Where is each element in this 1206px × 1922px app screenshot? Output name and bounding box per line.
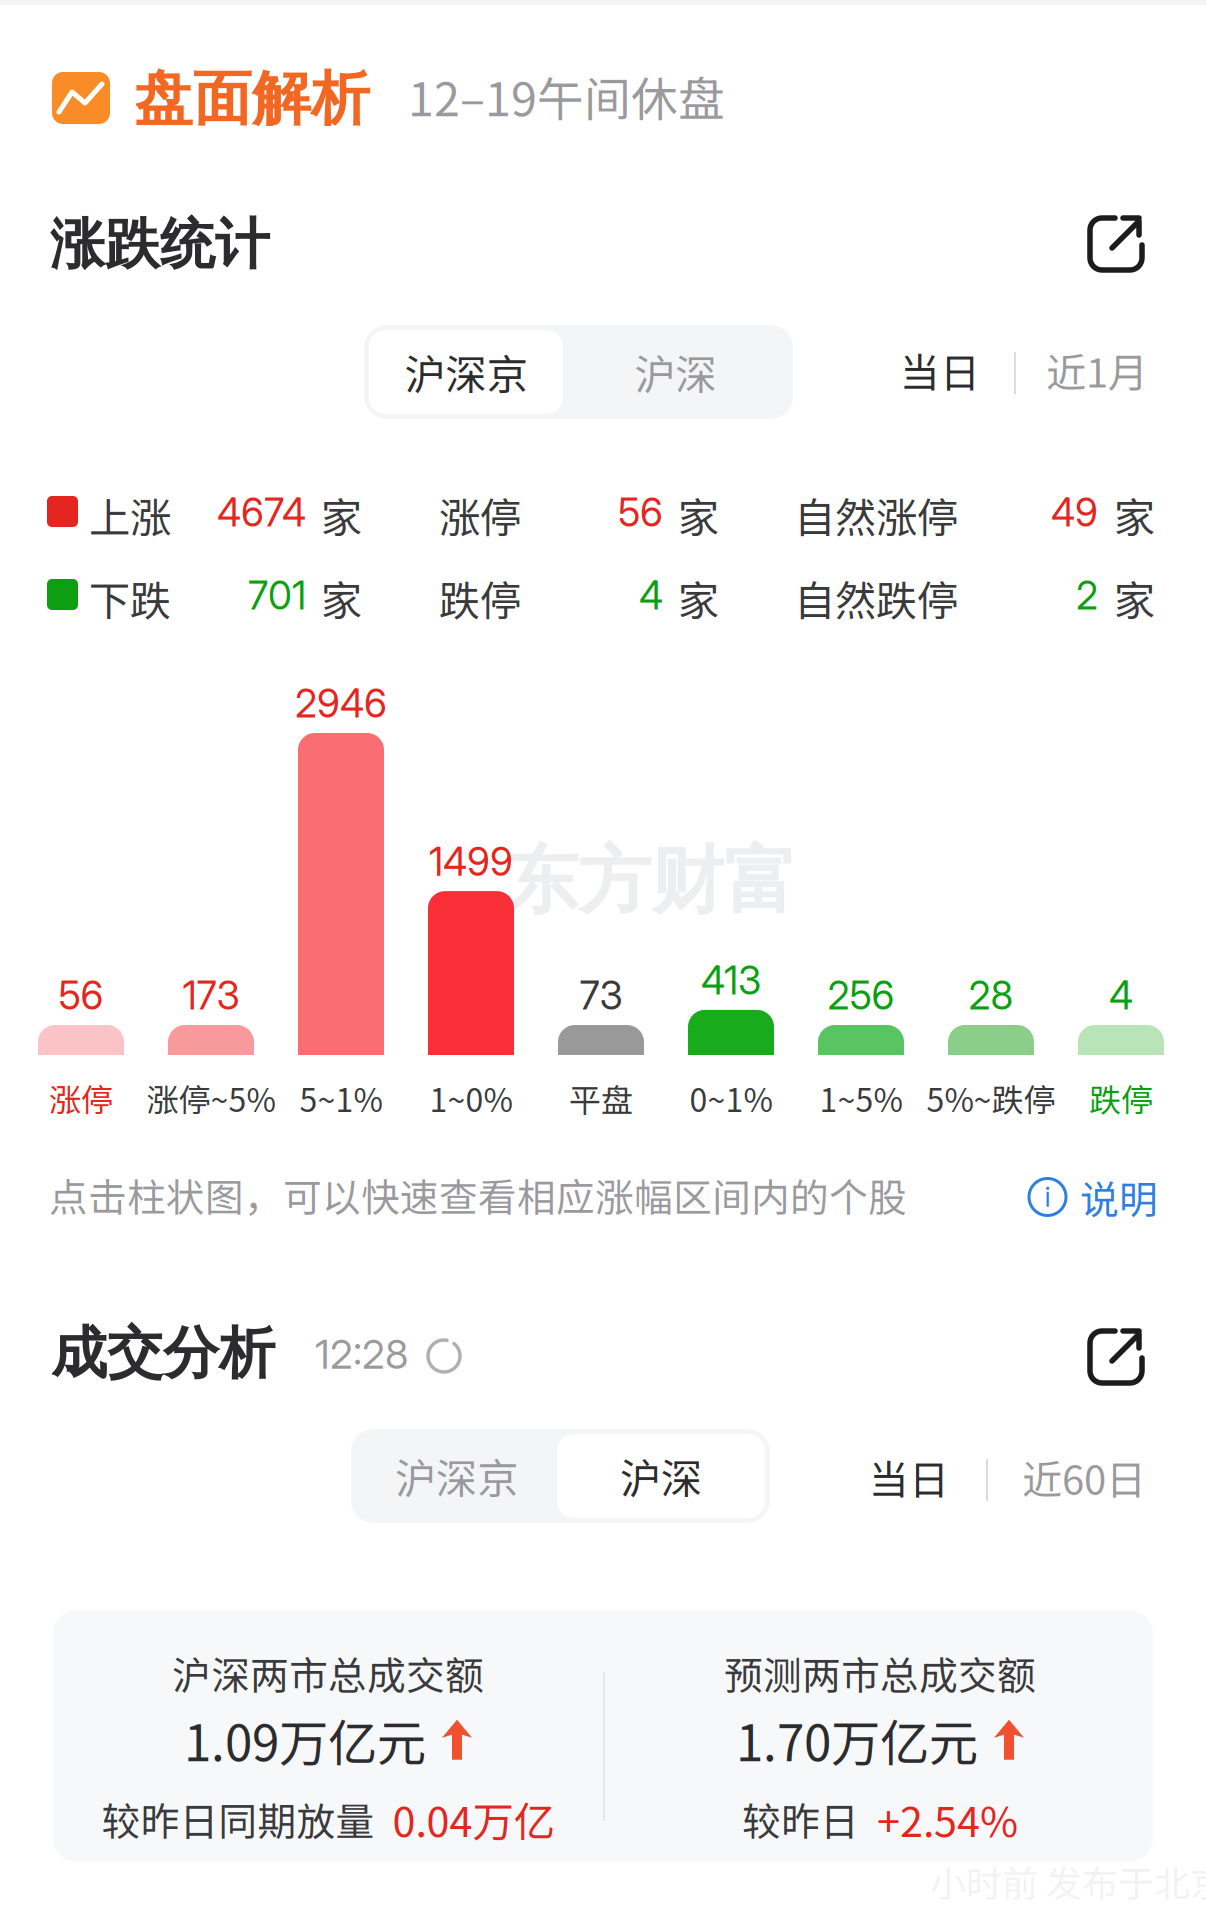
- staticText: 当日: [900, 341, 980, 399]
- button[interactable]: 打开涨跌统计: [1086, 214, 1146, 274]
- staticText: 家: [678, 485, 719, 545]
- staticText: 56: [58, 972, 103, 1019]
- staticText: 涨停~5%: [146, 1075, 275, 1121]
- staticText: 5~1%: [299, 1075, 382, 1121]
- staticText: 下跌: [89, 568, 171, 628]
- staticText: 2946: [295, 680, 387, 727]
- staticText: 自然涨停: [794, 485, 958, 545]
- staticText: 4: [639, 572, 663, 619]
- staticText: 涨跌统计: [50, 210, 270, 279]
- button[interactable]: 打开成交分析: [1086, 1327, 1146, 1387]
- staticText: 28: [968, 972, 1013, 1019]
- staticText: i: [1044, 1181, 1050, 1213]
- staticText: +2.54%: [877, 1789, 1018, 1849]
- button[interactable]: 256: [788, 966, 934, 1118]
- staticText: 4674: [217, 489, 306, 536]
- staticText: 1.70万亿元: [736, 1704, 978, 1775]
- staticText: 4: [1109, 972, 1133, 1019]
- button[interactable]: 56: [8, 966, 154, 1118]
- staticText: 1499: [429, 838, 513, 885]
- staticText: 56: [618, 489, 663, 536]
- staticText: 沪深京: [395, 1446, 518, 1506]
- staticText: 盘面解析: [134, 62, 370, 136]
- staticText: 较昨日同期放量: [101, 1791, 374, 1847]
- button[interactable]: 近60日: [1022, 1447, 1182, 1507]
- staticText: 涨停: [439, 485, 521, 545]
- staticText: 家: [1114, 568, 1155, 628]
- button[interactable]: 28: [918, 966, 1064, 1118]
- staticText: 沪深: [634, 342, 716, 402]
- staticText: 当日: [869, 1448, 949, 1506]
- staticText: 上涨: [89, 485, 171, 545]
- staticText: 家: [321, 568, 362, 628]
- button[interactable]: 沪深京: [369, 330, 563, 414]
- button[interactable]: 4: [1048, 966, 1194, 1118]
- staticText: 沪深: [620, 1446, 702, 1506]
- staticText: 家: [678, 568, 719, 628]
- staticText: 近1月: [1046, 341, 1148, 399]
- staticText: 701: [248, 572, 306, 619]
- button[interactable]: 173: [138, 966, 284, 1118]
- staticText: 较昨日: [742, 1791, 859, 1847]
- staticText: 沪深京: [404, 342, 527, 402]
- staticText: 0~1%: [689, 1075, 772, 1121]
- staticText: 东方财富: [505, 835, 797, 927]
- staticText: 256: [827, 972, 894, 1019]
- staticText: 173: [182, 972, 239, 1019]
- staticText: 跌停: [439, 568, 521, 628]
- staticText: 2: [1076, 572, 1098, 619]
- staticText: 点击柱状图，可以快速查看相应涨幅区间内的个股: [49, 1167, 907, 1223]
- staticText: 平盘: [569, 1075, 633, 1121]
- staticText: 自然跌停: [794, 568, 958, 628]
- button[interactable]: 沪深京: [356, 1434, 557, 1518]
- staticText: 12:28: [315, 1330, 408, 1378]
- staticText: 5%~跌停: [926, 1075, 1055, 1121]
- button[interactable]: 当日: [854, 1447, 964, 1507]
- staticText: 沪深两市总成交额: [172, 1645, 484, 1701]
- staticText: 说明: [1080, 1169, 1158, 1225]
- button[interactable]: 当日: [885, 340, 995, 400]
- staticText: 家: [321, 485, 362, 545]
- staticText: 预测两市总成交额: [724, 1645, 1036, 1701]
- button[interactable]: 近1月: [1037, 340, 1157, 400]
- staticText: 0.04万亿: [392, 1789, 554, 1849]
- staticText: 成交分析: [51, 1318, 275, 1388]
- staticText: 1~0%: [429, 1075, 512, 1121]
- staticText: 近60日: [1022, 1448, 1146, 1506]
- staticText: 12–19午间休盘: [408, 62, 725, 130]
- button[interactable]: 2946: [268, 674, 414, 1118]
- button[interactable]: 沪深: [557, 1434, 765, 1518]
- button[interactable]: 1499: [398, 832, 544, 1118]
- staticText: 家: [1114, 485, 1155, 545]
- staticText: 49: [1051, 489, 1098, 536]
- staticText: 1~5%: [819, 1075, 902, 1121]
- button[interactable]: 73: [528, 966, 674, 1118]
- staticText: 涨停: [49, 1075, 113, 1121]
- staticText: 小时前 发布于北京: [930, 1855, 1206, 1907]
- staticText: 73: [579, 972, 622, 1019]
- staticText: 413: [701, 957, 761, 1004]
- staticText: 1.09万亿元: [184, 1704, 426, 1775]
- staticText: 跌停: [1089, 1075, 1153, 1121]
- button[interactable]: 沪深: [563, 330, 788, 414]
- button[interactable]: i: [1029, 1169, 1158, 1225]
- button[interactable]: 413: [658, 951, 804, 1118]
